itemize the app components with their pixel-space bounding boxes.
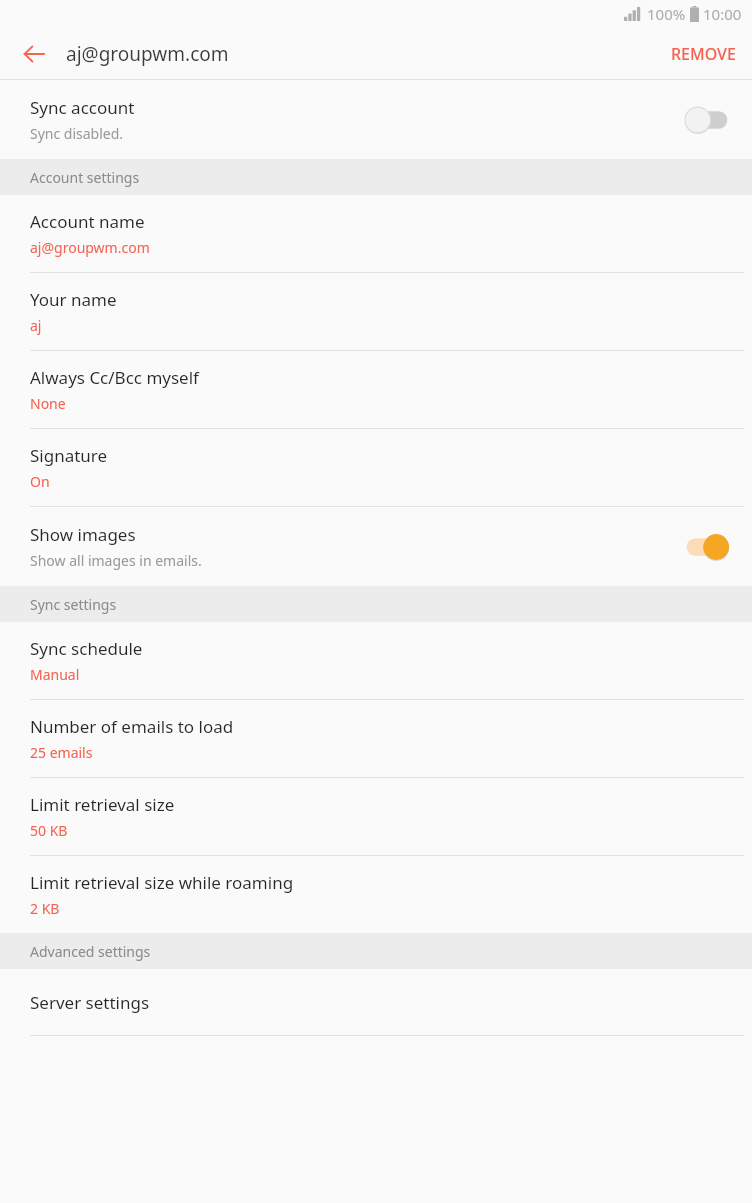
button[interactable]: Your name — [0, 273, 752, 350]
staticText: Your name — [30, 288, 117, 311]
staticText: Sync account — [30, 96, 135, 119]
staticText: Limit retrieval size while roaming — [30, 871, 294, 894]
button[interactable]: Sync account — [0, 80, 752, 159]
staticText: aj@groupwm.com — [30, 238, 150, 257]
staticText: Account name — [30, 210, 145, 233]
staticText: Show images — [30, 523, 136, 546]
staticText: Signature — [30, 444, 108, 467]
staticText: 100% — [647, 4, 686, 24]
button[interactable]: Show images — [0, 507, 752, 586]
staticText: None — [30, 394, 66, 413]
staticText: Manual — [30, 665, 80, 684]
staticText: Always Cc/Bcc myself — [30, 366, 199, 389]
other: Off — [684, 106, 730, 134]
staticText: Server settings — [30, 991, 150, 1014]
staticText: REMOVE — [671, 43, 736, 65]
staticText: Number of emails to load — [30, 715, 234, 738]
staticText: Sync disabled. — [30, 124, 124, 143]
staticText: Limit retrieval size — [30, 793, 175, 816]
other: On — [684, 533, 730, 561]
staticText: 10:00 — [703, 4, 742, 24]
button[interactable]: Limit retrieval size — [0, 778, 752, 855]
staticText: 2 KB — [30, 899, 60, 918]
staticText: Advanced settings — [30, 942, 151, 961]
staticText: On — [30, 472, 50, 491]
button[interactable]: Signature — [0, 429, 752, 506]
button[interactable]: Account name — [0, 195, 752, 272]
staticText: Sync settings — [30, 595, 117, 614]
staticText: aj — [30, 316, 42, 335]
staticText: aj@groupwm.com — [66, 41, 229, 67]
button[interactable]: Limit retrieval size while roaming — [0, 856, 752, 933]
staticText: 25 emails — [30, 743, 93, 762]
button[interactable]: Back — [14, 34, 54, 74]
button[interactable]: Server settings — [0, 969, 752, 1035]
button[interactable]: Always Cc/Bcc myself — [0, 351, 752, 428]
staticText: 50 KB — [30, 821, 68, 840]
staticText: Sync schedule — [30, 637, 143, 660]
button[interactable]: REMOVE — [655, 33, 752, 75]
staticText: Account settings — [30, 168, 140, 187]
staticText: Show all images in emails. — [30, 551, 202, 570]
button[interactable]: Number of emails to load — [0, 700, 752, 777]
button[interactable]: Sync schedule — [0, 622, 752, 699]
